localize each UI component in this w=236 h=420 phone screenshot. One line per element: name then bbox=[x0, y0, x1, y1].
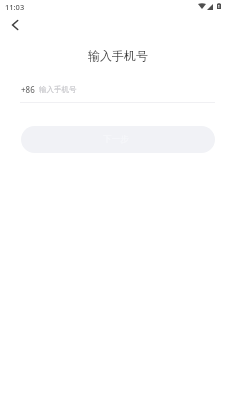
staticText: +86 bbox=[21, 84, 35, 95]
staticText: 输入手机号 bbox=[88, 48, 148, 63]
button[interactable]: +86 bbox=[21, 79, 35, 99]
staticText: 输入手机号 bbox=[39, 85, 77, 94]
staticText: 11:03 bbox=[5, 2, 25, 12]
button[interactable]: Back bbox=[2, 12, 28, 38]
button[interactable]: 输入手机号 bbox=[39, 79, 215, 99]
